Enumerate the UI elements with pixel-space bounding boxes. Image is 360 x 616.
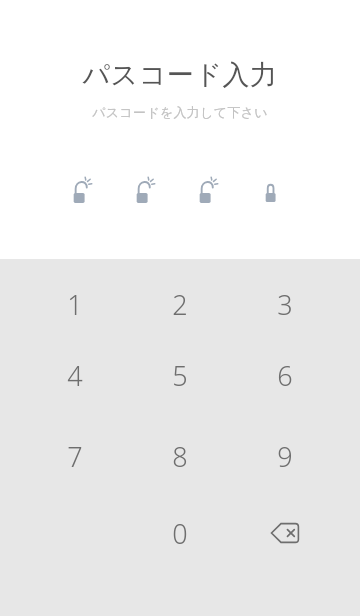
staticText: 8 (172, 438, 188, 475)
staticText: 3 (277, 286, 293, 323)
button[interactable]: 4 (32, 343, 118, 407)
button[interactable]: 7 (32, 424, 118, 488)
staticText: パスコード入力 (0, 58, 360, 92)
button[interactable]: 3 (242, 272, 328, 336)
staticText: 0 (172, 515, 188, 552)
staticText: 9 (277, 438, 293, 475)
button[interactable]: 2 (137, 272, 223, 336)
staticText: 5 (172, 357, 188, 394)
button[interactable]: Backspace (242, 501, 328, 565)
button[interactable]: 0 (137, 501, 223, 565)
button[interactable]: 1 (32, 272, 118, 336)
button[interactable]: 9 (242, 424, 328, 488)
staticText: 2 (172, 286, 188, 323)
button[interactable]: 6 (242, 343, 328, 407)
staticText: 7 (67, 438, 83, 475)
staticText: 6 (277, 357, 293, 394)
staticText: パスコードを入力して下さい (0, 104, 360, 120)
button[interactable]: 5 (137, 343, 223, 407)
staticText: 4 (67, 357, 83, 394)
button[interactable]: 8 (137, 424, 223, 488)
staticText: 1 (67, 286, 83, 323)
